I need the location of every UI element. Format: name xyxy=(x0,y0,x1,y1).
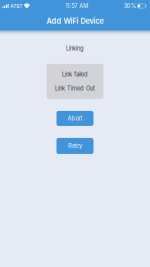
staticText: Add WiFi Device xyxy=(46,17,103,25)
staticText: Link Timed Out xyxy=(55,85,95,92)
button[interactable]: Retry xyxy=(56,138,93,154)
staticText: Linking xyxy=(66,45,84,52)
staticText: Abort xyxy=(67,115,82,122)
staticText: 11:57 AM xyxy=(65,3,88,9)
staticText: 30% xyxy=(124,3,136,9)
staticText: Retry xyxy=(68,142,82,149)
staticText: AT&T xyxy=(10,3,22,9)
button[interactable]: Abort xyxy=(56,111,93,126)
staticText: Link failed xyxy=(62,71,88,78)
